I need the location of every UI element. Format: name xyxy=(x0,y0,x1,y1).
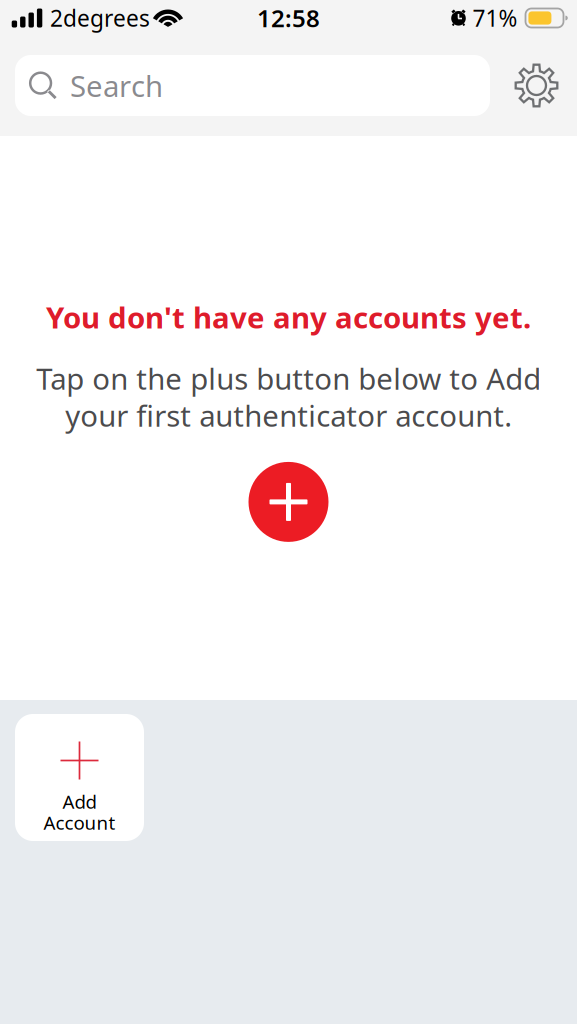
staticText: Add xyxy=(62,789,96,814)
button[interactable]: Add xyxy=(15,714,144,841)
staticText: 71% xyxy=(472,3,517,33)
staticText: You don't have any accounts yet. xyxy=(46,297,531,336)
staticText: 12:58 xyxy=(257,2,320,34)
staticText: Search xyxy=(70,66,163,105)
staticText: Tap on the plus button below to Add your… xyxy=(36,359,541,435)
button[interactable]: Add account xyxy=(248,435,328,542)
staticText: 2degrees xyxy=(50,3,150,33)
button[interactable]: Settings xyxy=(490,55,577,116)
staticText: Account xyxy=(43,810,115,835)
button[interactable]: Search xyxy=(15,55,490,116)
